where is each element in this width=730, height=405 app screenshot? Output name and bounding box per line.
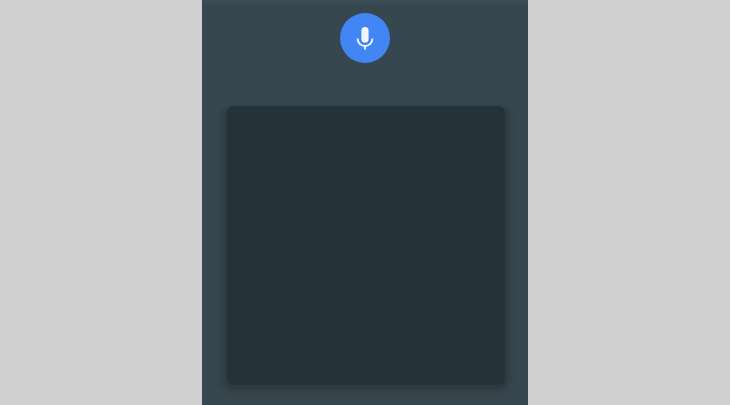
button[interactable]: Voice input bbox=[340, 13, 390, 63]
